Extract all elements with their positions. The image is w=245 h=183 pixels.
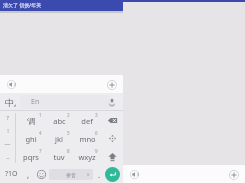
button[interactable]: Backspace bbox=[101, 111, 123, 129]
staticText: , bbox=[27, 169, 30, 180]
button[interactable]: ghi bbox=[16, 129, 45, 147]
button[interactable]: Sound bbox=[6, 79, 17, 90]
staticText: 清欠了 切换/年美 bbox=[3, 2, 42, 9]
button[interactable]: En bbox=[20, 95, 110, 109]
staticText: — bbox=[4, 140, 11, 148]
button[interactable]: Sound bbox=[129, 169, 140, 180]
staticText: tuv bbox=[53, 152, 65, 162]
staticText: wxyz bbox=[78, 152, 96, 162]
staticText: 4 bbox=[39, 130, 42, 136]
button[interactable]: def bbox=[73, 111, 101, 129]
staticText: 7 bbox=[39, 148, 42, 154]
staticText: 3 bbox=[95, 112, 98, 118]
button[interactable]: — bbox=[0, 137, 15, 151]
button[interactable]: Add bbox=[228, 169, 239, 180]
button[interactable]: Shift bbox=[101, 147, 123, 165]
button[interactable]: wxyz bbox=[73, 147, 101, 165]
button[interactable]: ?1O bbox=[0, 165, 22, 183]
staticText: 5 bbox=[67, 130, 70, 136]
button[interactable]: , bbox=[22, 165, 34, 183]
button[interactable]: ! bbox=[0, 124, 15, 137]
staticText: 中, bbox=[5, 96, 17, 108]
staticText: En bbox=[31, 97, 40, 107]
staticText: pqrs bbox=[23, 152, 39, 162]
staticText: ! bbox=[7, 127, 9, 135]
staticText: def bbox=[81, 116, 93, 126]
button[interactable]: Enter bbox=[105, 167, 120, 182]
button[interactable]: Add bbox=[106, 79, 117, 90]
button[interactable]: 拼音 bbox=[49, 169, 93, 180]
staticText: ?1O bbox=[5, 169, 18, 179]
staticText: 2 bbox=[67, 112, 70, 118]
button[interactable]: jkl bbox=[45, 129, 73, 147]
button[interactable]: . bbox=[94, 165, 105, 183]
staticText: 拼音 bbox=[66, 172, 76, 178]
button[interactable]: '调 bbox=[16, 111, 45, 129]
staticText: ~ bbox=[6, 154, 10, 162]
staticText: 8 bbox=[67, 148, 70, 154]
staticText: jkl bbox=[55, 134, 63, 144]
staticText: abc bbox=[53, 116, 66, 126]
staticText: ghi bbox=[25, 134, 37, 144]
button[interactable]: Move cursor bbox=[101, 129, 123, 147]
staticText: 6 bbox=[95, 130, 98, 136]
staticText: '调 bbox=[26, 116, 36, 126]
staticText: ? bbox=[6, 114, 9, 122]
button[interactable]: mno bbox=[73, 129, 101, 147]
button[interactable]: ? bbox=[0, 111, 15, 124]
staticText: mno bbox=[79, 134, 96, 144]
button[interactable]: Emoji bbox=[34, 165, 48, 183]
staticText: 1 bbox=[39, 112, 42, 118]
button[interactable]: tuv bbox=[45, 147, 73, 165]
button[interactable]: 中, bbox=[3, 94, 18, 109]
button[interactable]: abc bbox=[45, 111, 73, 129]
button[interactable]: 清欠了 切换/年美 bbox=[0, 0, 123, 11]
staticText: 9 bbox=[95, 148, 98, 154]
staticText: . bbox=[98, 169, 101, 180]
staticText: 0 bbox=[87, 172, 90, 177]
button[interactable]: Voice input bbox=[106, 96, 118, 108]
button[interactable]: ~ bbox=[0, 151, 15, 165]
button[interactable]: pqrs bbox=[16, 147, 45, 165]
